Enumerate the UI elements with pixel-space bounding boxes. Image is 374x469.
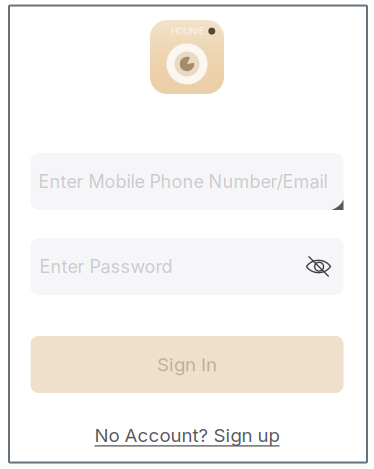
staticText: Sign In — [157, 353, 217, 376]
button[interactable]: Sign In — [30, 336, 343, 393]
staticText: Enter Mobile Phone Number/Email — [38, 171, 327, 192]
button[interactable]: Show password — [302, 238, 334, 295]
staticText: HOUNIE — [171, 26, 204, 36]
staticText: No Account? Sign up — [94, 424, 279, 447]
button[interactable]: Enter Mobile Phone Number/Email — [30, 153, 343, 210]
button[interactable]: No Account? Sign up — [94, 424, 279, 447]
staticText: Enter Password — [39, 256, 172, 277]
button[interactable]: Enter Password — [39, 238, 302, 295]
